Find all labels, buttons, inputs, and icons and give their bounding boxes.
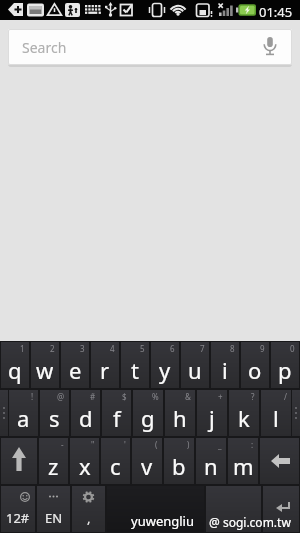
staticText: w: [36, 355, 54, 385]
staticText: @: [57, 391, 65, 402]
staticText: t: [131, 355, 139, 385]
staticText: :: [251, 439, 254, 450]
staticText: yuwengliu: [131, 512, 194, 530]
button[interactable]: a: [9, 390, 38, 436]
staticText: 0: [290, 343, 295, 354]
staticText: g: [141, 403, 155, 433]
staticText: e: [69, 355, 82, 385]
staticText: ?: [251, 391, 255, 402]
button[interactable]: [260, 438, 299, 484]
staticText: x: [79, 451, 91, 481]
staticText: m: [233, 451, 254, 481]
button[interactable]: [1, 438, 37, 484]
button[interactable]: p: [271, 342, 299, 388]
staticText: a: [17, 403, 30, 433]
staticText: 1: [20, 343, 25, 354]
staticText: d: [79, 403, 93, 433]
staticText: i: [222, 355, 228, 385]
staticText: h: [173, 403, 187, 433]
button[interactable]: 12#: [1, 486, 35, 532]
staticText: p: [278, 355, 292, 385]
button[interactable]: u: [181, 342, 209, 388]
staticText: 7: [200, 343, 205, 354]
button[interactable]: f: [102, 390, 131, 436]
button[interactable]: ,: [72, 486, 105, 532]
button[interactable]: b: [164, 438, 194, 484]
button[interactable]: e: [61, 342, 89, 388]
button[interactable]: [107, 486, 204, 532]
staticText: j: [209, 403, 215, 433]
button[interactable]: g: [133, 390, 163, 436]
button[interactable]: [206, 486, 261, 532]
staticText: ): [187, 439, 190, 450]
button[interactable]: n: [196, 438, 226, 484]
button[interactable]: Search: [8, 29, 292, 65]
button[interactable]: v: [132, 438, 162, 484]
staticText: 2: [50, 343, 55, 354]
button[interactable]: r: [91, 342, 119, 388]
staticText: $: [122, 391, 127, 402]
button[interactable]: x: [70, 438, 99, 484]
staticText: #: [90, 391, 96, 402]
staticText: /: [284, 391, 287, 402]
button[interactable]: s: [40, 390, 69, 436]
staticText: o: [248, 355, 262, 385]
staticText: r: [100, 355, 110, 385]
staticText: n: [204, 451, 218, 481]
staticText: ": [91, 439, 95, 450]
button[interactable]: o: [241, 342, 269, 388]
staticText: 4: [110, 343, 115, 354]
staticText: 12#: [6, 509, 30, 527]
staticText: _: [218, 439, 222, 450]
staticText: ': [124, 439, 126, 450]
button[interactable]: d: [71, 390, 100, 436]
button[interactable]: w: [31, 342, 59, 388]
staticText: !: [31, 391, 34, 402]
staticText: &: [185, 391, 191, 402]
staticText: c: [110, 451, 121, 481]
button[interactable]: q: [1, 342, 29, 388]
button[interactable]: [0, 390, 8, 436]
staticText: q: [8, 355, 22, 385]
button[interactable]: z: [39, 438, 68, 484]
button[interactable]: h: [165, 390, 195, 436]
staticText: y: [159, 355, 171, 385]
button[interactable]: l: [261, 390, 291, 436]
button[interactable]: [263, 486, 299, 532]
staticText: v: [141, 451, 153, 481]
staticText: z: [48, 451, 59, 481]
staticText: Search: [22, 38, 67, 57]
staticText: ,: [87, 509, 91, 527]
staticText: l: [273, 403, 279, 433]
staticText: 6: [170, 343, 175, 354]
staticText: u: [188, 355, 202, 385]
button[interactable]: k: [229, 390, 259, 436]
button[interactable]: y: [151, 342, 179, 388]
staticText: 9: [260, 343, 265, 354]
staticText: 3: [80, 343, 85, 354]
staticText: +: [218, 391, 223, 402]
button[interactable]: [292, 390, 300, 436]
button[interactable]: m: [228, 438, 258, 484]
staticText: 5: [140, 343, 145, 354]
staticText: @ sogi.com.tw: [209, 514, 291, 530]
staticText: s: [49, 403, 60, 433]
button[interactable]: t: [121, 342, 149, 388]
button[interactable]: EN: [37, 486, 70, 532]
staticText: f: [113, 403, 121, 433]
staticText: k: [238, 403, 250, 433]
button[interactable]: i: [211, 342, 239, 388]
staticText: 8: [230, 343, 235, 354]
staticText: -: [61, 439, 64, 450]
staticText: b: [172, 451, 186, 481]
staticText: (: [155, 439, 158, 450]
button[interactable]: c: [101, 438, 130, 484]
staticText: EN: [45, 509, 63, 527]
staticText: %: [152, 391, 159, 402]
button[interactable]: j: [197, 390, 227, 436]
staticText: 01:45: [259, 3, 293, 21]
